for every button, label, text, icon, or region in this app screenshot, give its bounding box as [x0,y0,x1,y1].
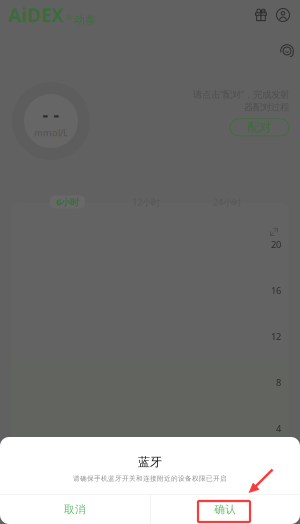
button[interactable]: 取消 [0,495,150,524]
staticText: 6小时 [56,196,79,208]
button[interactable]: Expand chart [267,225,281,239]
button[interactable]: 配对 [230,119,289,136]
staticText: ® [66,13,72,22]
staticText: 动泰 [74,13,96,26]
staticText: 配对 [247,120,271,135]
staticText: 蓝牙 [138,455,162,469]
button[interactable]: 6小时 [50,195,85,208]
staticText: AiDEX [8,3,64,27]
staticText: mmol/L [34,126,68,139]
staticText: 请确保手机蓝牙开关和连接附近的设备权限已开启 [73,474,227,483]
button[interactable]: Profile [272,2,294,28]
staticText: 请点击“配对”，完成发射 [193,88,289,100]
staticText: 取消 [64,503,86,516]
button[interactable]: 确认 [151,495,300,524]
button[interactable]: Rewards [250,2,272,28]
staticText: 器配对过程 [244,101,289,113]
staticText: 8 [276,376,281,389]
button[interactable]: Support [278,42,296,60]
staticText: 4 [276,422,281,435]
staticText: - - [42,103,59,126]
staticText: 16 [271,284,281,297]
staticText: 12 [271,330,281,343]
staticText: 24小时 [213,196,241,208]
staticText: 确认 [214,503,236,516]
staticText: 20 [271,238,281,251]
